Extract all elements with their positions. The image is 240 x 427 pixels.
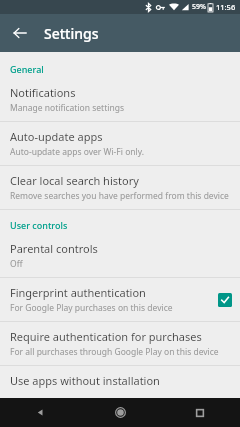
staticText: Off	[10, 258, 23, 270]
button[interactable]: Clear local search history	[0, 166, 240, 209]
staticText: Settings	[44, 24, 99, 43]
button[interactable]: Auto-update apps	[0, 122, 240, 165]
staticText: User controls	[10, 219, 68, 231]
staticText: Auto-update apps over Wi-Fi only.	[10, 146, 145, 158]
button[interactable]: Notifications	[0, 78, 240, 121]
staticText: General	[10, 63, 44, 75]
button[interactable]: Back	[0, 398, 80, 427]
staticText: Manage notification settings	[10, 102, 124, 114]
staticText: For all purchases through Google Play on…	[10, 346, 219, 358]
staticText: 11:56	[216, 2, 236, 12]
staticText: Auto-update apps	[10, 129, 103, 144]
staticText: Parental controls	[10, 241, 98, 256]
staticText: Notifications	[10, 85, 76, 100]
staticText: Remove searches you have performed from …	[10, 190, 229, 202]
staticText: 59%	[192, 2, 206, 12]
button[interactable]: Back	[6, 19, 34, 47]
staticText: Use apps without installation	[10, 373, 160, 388]
button[interactable]: Use apps without installation	[0, 366, 240, 398]
button[interactable]: Recent apps	[160, 398, 240, 427]
button[interactable]: Require authentication for purchases	[0, 322, 240, 365]
button[interactable]: Fingerprint authentication	[0, 278, 240, 321]
button[interactable]: Home	[80, 398, 160, 427]
staticText: For Google Play purchases on this device	[10, 302, 173, 314]
button[interactable]: Parental controls	[0, 234, 240, 277]
staticText: Require authentication for purchases	[10, 329, 202, 344]
staticText: Clear local search history	[10, 173, 139, 188]
staticText: Fingerprint authentication	[10, 285, 146, 300]
button[interactable]: Fingerprint authentication enabled	[218, 293, 232, 307]
